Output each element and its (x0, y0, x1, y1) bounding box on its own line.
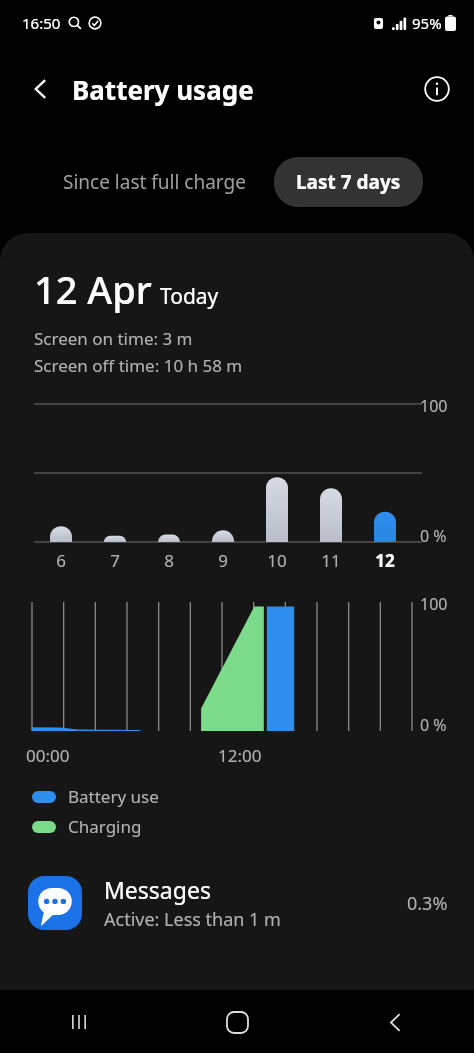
staticText: 00:00 (26, 744, 70, 767)
staticText: 16:50 (22, 13, 61, 33)
staticText: 0.3% (407, 891, 448, 916)
staticText: Battery usage (72, 72, 254, 107)
staticText: 12 (375, 549, 395, 572)
button[interactable]: Last 7 days (274, 157, 423, 207)
staticText: Active: Less than 1 m (104, 907, 281, 932)
staticText: 12 Apr (34, 263, 152, 315)
staticText: 10 (267, 549, 287, 572)
button[interactable]: Home (207, 992, 267, 1052)
staticText: 0 % (420, 525, 447, 547)
button[interactable]: Information (414, 66, 460, 112)
staticText: 95% (412, 13, 442, 33)
staticText: 9 (218, 549, 228, 572)
staticText: Last 7 days (296, 169, 401, 195)
button[interactable]: Recent apps (49, 992, 109, 1052)
staticText: Today (160, 282, 219, 311)
button[interactable]: Back (365, 992, 425, 1052)
staticText: 100 (420, 395, 448, 417)
staticText: 12:00 (218, 744, 262, 767)
button[interactable]: Back (18, 66, 64, 112)
staticText: 11 (321, 549, 341, 572)
staticText: Battery use (68, 785, 159, 808)
staticText: 0 % (420, 714, 447, 736)
staticText: Messages (104, 874, 211, 905)
button[interactable]: Messages (0, 868, 474, 938)
staticText: Screen off time: 10 h 58 m (34, 354, 243, 377)
button[interactable]: Since last full charge (51, 159, 258, 205)
staticText: Since last full charge (63, 169, 246, 195)
staticText: 100 (420, 593, 448, 615)
staticText: 7 (110, 549, 120, 572)
staticText: Screen on time: 3 m (34, 327, 193, 350)
staticText: 8 (164, 549, 174, 572)
staticText: Charging (68, 815, 142, 838)
staticText: 6 (56, 549, 66, 572)
